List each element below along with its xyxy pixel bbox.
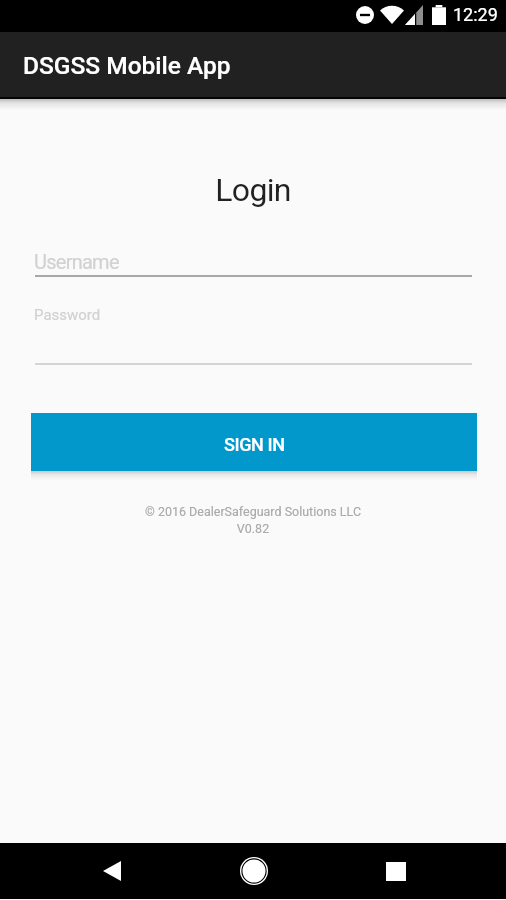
staticText: DSGSS Mobile App [23, 51, 231, 80]
button[interactable]: Username [35, 243, 472, 277]
staticText: SIGN IN [224, 434, 285, 455]
staticText: © 2016 DealerSafeguard Solutions LLC [0, 504, 506, 519]
staticText: 12:29 [453, 4, 498, 25]
button[interactable]: SIGN IN [31, 413, 477, 471]
staticText: V0.82 [0, 521, 506, 536]
button[interactable]: Recent apps [372, 847, 420, 895]
staticText: Username [34, 250, 119, 273]
button[interactable]: Back [88, 847, 136, 895]
staticText: Login [0, 171, 506, 209]
staticText: Password [34, 306, 101, 324]
button[interactable]: Password [35, 300, 472, 365]
button[interactable]: Home [230, 847, 278, 895]
